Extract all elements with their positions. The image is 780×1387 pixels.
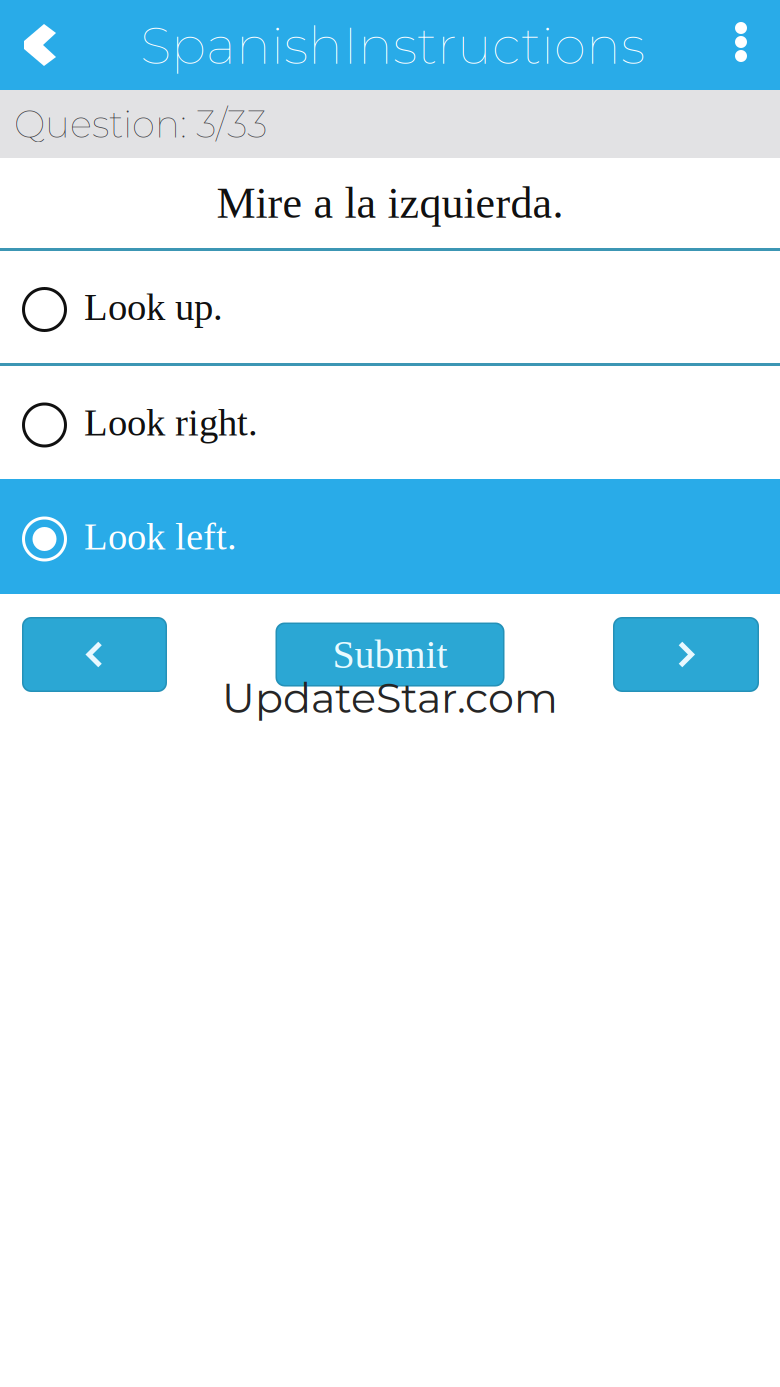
button[interactable]: More options xyxy=(696,0,780,90)
staticText: Question: 3/33 xyxy=(14,101,267,147)
staticText: Look right. xyxy=(84,401,258,444)
button[interactable]: Look right. xyxy=(0,366,780,479)
staticText: Mire a la izquierda. xyxy=(216,179,563,227)
staticText: Look left. xyxy=(84,515,237,558)
button[interactable]: Submit xyxy=(275,622,504,686)
button[interactable]: Back xyxy=(0,0,84,90)
staticText: Submit xyxy=(332,632,447,677)
button[interactable]: Next question xyxy=(613,617,759,692)
staticText: Look up. xyxy=(84,286,223,328)
button[interactable]: Look left. xyxy=(0,479,780,594)
button[interactable]: Previous question xyxy=(22,617,167,692)
staticText: UpdateStar.com xyxy=(222,673,558,723)
staticText: SpanishInstructions xyxy=(140,13,645,77)
button[interactable]: Look up. xyxy=(0,251,780,363)
